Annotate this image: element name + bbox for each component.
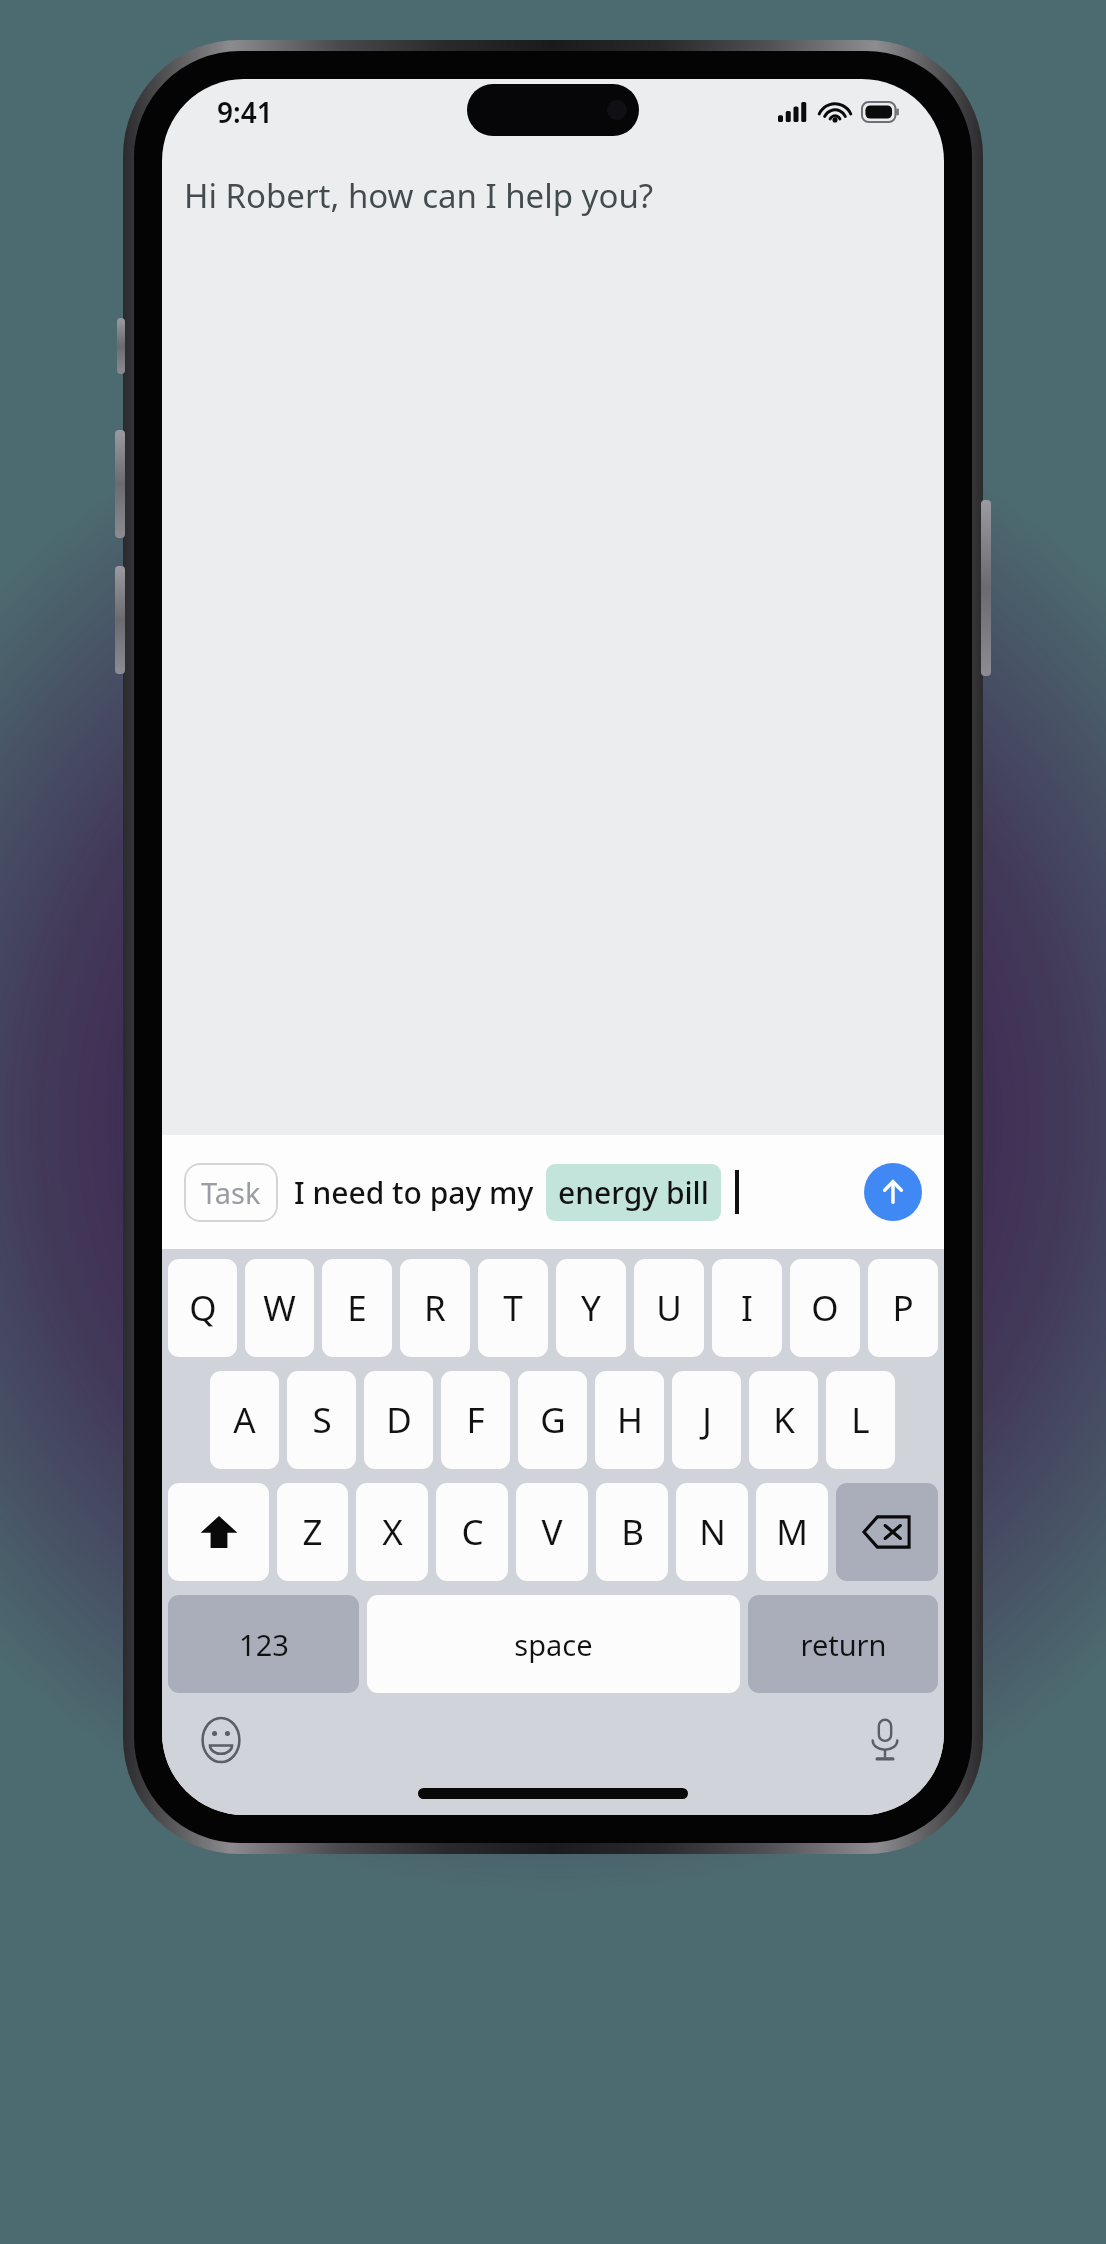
staticText: E <box>347 1284 367 1332</box>
button[interactable]: U <box>634 1259 704 1357</box>
staticText: T <box>503 1284 523 1332</box>
button[interactable]: F <box>441 1371 510 1469</box>
staticText: space <box>514 1625 593 1664</box>
staticText: H <box>617 1396 643 1444</box>
button[interactable]: J <box>672 1371 741 1469</box>
staticText: Hi Robert, how can I help you? <box>184 173 932 218</box>
staticText: I need to pay my <box>294 1172 534 1213</box>
button[interactable]: A <box>210 1371 279 1469</box>
button[interactable]: space <box>367 1595 740 1693</box>
button[interactable]: L <box>826 1371 895 1469</box>
button[interactable]: D <box>364 1371 433 1469</box>
staticText: O <box>811 1284 839 1332</box>
staticText: Q <box>189 1284 217 1332</box>
button[interactable]: S <box>287 1371 356 1469</box>
staticText: M <box>776 1508 808 1556</box>
button[interactable]: G <box>518 1371 587 1469</box>
button[interactable]: H <box>595 1371 664 1469</box>
staticText: X <box>382 1508 403 1556</box>
staticText: Y <box>581 1284 601 1332</box>
button[interactable]: Dictation <box>856 1711 914 1769</box>
button[interactable]: Emoji <box>192 1711 250 1769</box>
staticText: L <box>851 1396 870 1444</box>
button[interactable]: N <box>676 1483 748 1581</box>
staticText: P <box>892 1284 914 1332</box>
button[interactable]: K <box>749 1371 818 1469</box>
button[interactable]: E <box>322 1259 392 1357</box>
button[interactable]: R <box>400 1259 470 1357</box>
staticText: S <box>312 1396 332 1444</box>
staticText: W <box>263 1284 296 1332</box>
button[interactable]: X <box>356 1483 428 1581</box>
staticText: I <box>741 1284 753 1332</box>
button[interactable]: M <box>756 1483 828 1581</box>
button[interactable]: return <box>748 1595 938 1693</box>
button[interactable]: Send <box>864 1163 922 1221</box>
staticText: K <box>773 1396 795 1444</box>
staticText: B <box>621 1508 644 1556</box>
button[interactable]: energy bill <box>546 1164 721 1221</box>
button[interactable]: Backspace <box>836 1483 938 1581</box>
button[interactable]: C <box>436 1483 508 1581</box>
button[interactable]: I <box>712 1259 782 1357</box>
staticText: 9:41 <box>217 93 273 131</box>
button[interactable]: O <box>790 1259 860 1357</box>
staticText: return <box>800 1625 887 1664</box>
staticText: D <box>386 1396 412 1444</box>
button[interactable]: W <box>245 1259 314 1357</box>
staticText: Task <box>201 1173 261 1212</box>
button[interactable]: T <box>478 1259 548 1357</box>
button[interactable]: Y <box>556 1259 626 1357</box>
button[interactable]: Q <box>168 1259 237 1357</box>
staticText: U <box>656 1284 682 1332</box>
button[interactable]: B <box>596 1483 668 1581</box>
staticText: C <box>461 1508 484 1556</box>
button[interactable]: Shift <box>168 1483 269 1581</box>
button[interactable]: 123 <box>168 1595 359 1693</box>
button[interactable]: Task <box>184 1163 278 1222</box>
staticText: A <box>233 1396 256 1444</box>
staticText: N <box>699 1508 726 1556</box>
staticText: energy bill <box>558 1172 709 1213</box>
button[interactable]: V <box>516 1483 588 1581</box>
staticText: F <box>466 1396 485 1444</box>
staticText: 123 <box>239 1625 289 1664</box>
staticText: J <box>702 1396 712 1444</box>
button[interactable]: Z <box>277 1483 348 1581</box>
staticText: V <box>541 1508 563 1556</box>
staticText: G <box>540 1396 566 1444</box>
staticText: R <box>424 1284 446 1332</box>
button[interactable]: P <box>868 1259 938 1357</box>
staticText: Z <box>302 1508 323 1556</box>
